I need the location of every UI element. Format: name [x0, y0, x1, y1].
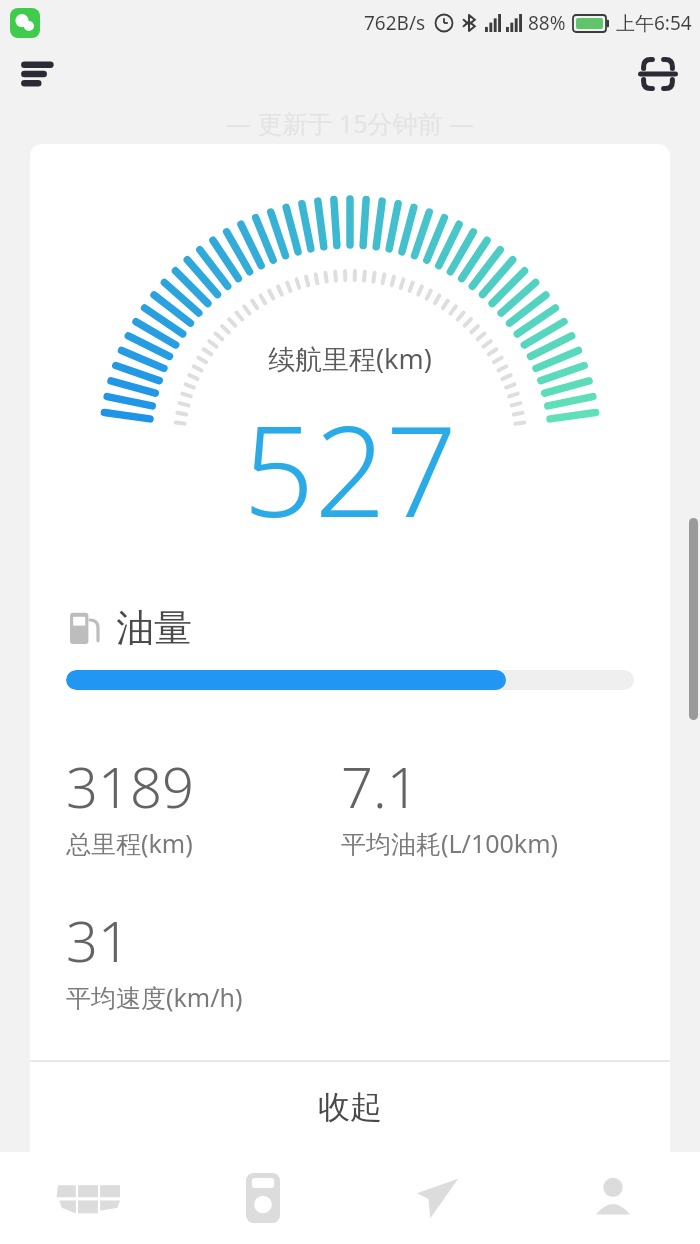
staticText: 平均速度(km/h)	[66, 980, 243, 1014]
staticText: 续航里程(km)	[268, 340, 432, 377]
staticText: 7.1	[341, 748, 419, 824]
staticText: 上午6:54	[616, 10, 692, 36]
button[interactable]: Profile	[525, 1152, 700, 1244]
staticText: 762B/s	[364, 10, 426, 36]
button[interactable]: Scan	[630, 46, 686, 102]
button[interactable]: Menu	[14, 46, 70, 102]
staticText: 31	[66, 902, 130, 978]
staticText: 总里程(km)	[66, 826, 193, 860]
staticText: — 更新于 15分钟前 —	[226, 106, 475, 140]
staticText: 平均油耗(L/100km)	[341, 826, 559, 860]
button[interactable]: Dashboard	[0, 1152, 175, 1244]
button[interactable]: 收起	[30, 1062, 670, 1152]
staticText: 88%	[528, 10, 566, 36]
staticText: 3189	[66, 748, 194, 824]
staticText: 油量	[116, 604, 192, 652]
button[interactable]: Navigate	[350, 1152, 525, 1244]
staticText: 收起	[318, 1087, 382, 1127]
staticText: 527	[243, 383, 458, 553]
button[interactable]: Remote	[175, 1152, 350, 1244]
